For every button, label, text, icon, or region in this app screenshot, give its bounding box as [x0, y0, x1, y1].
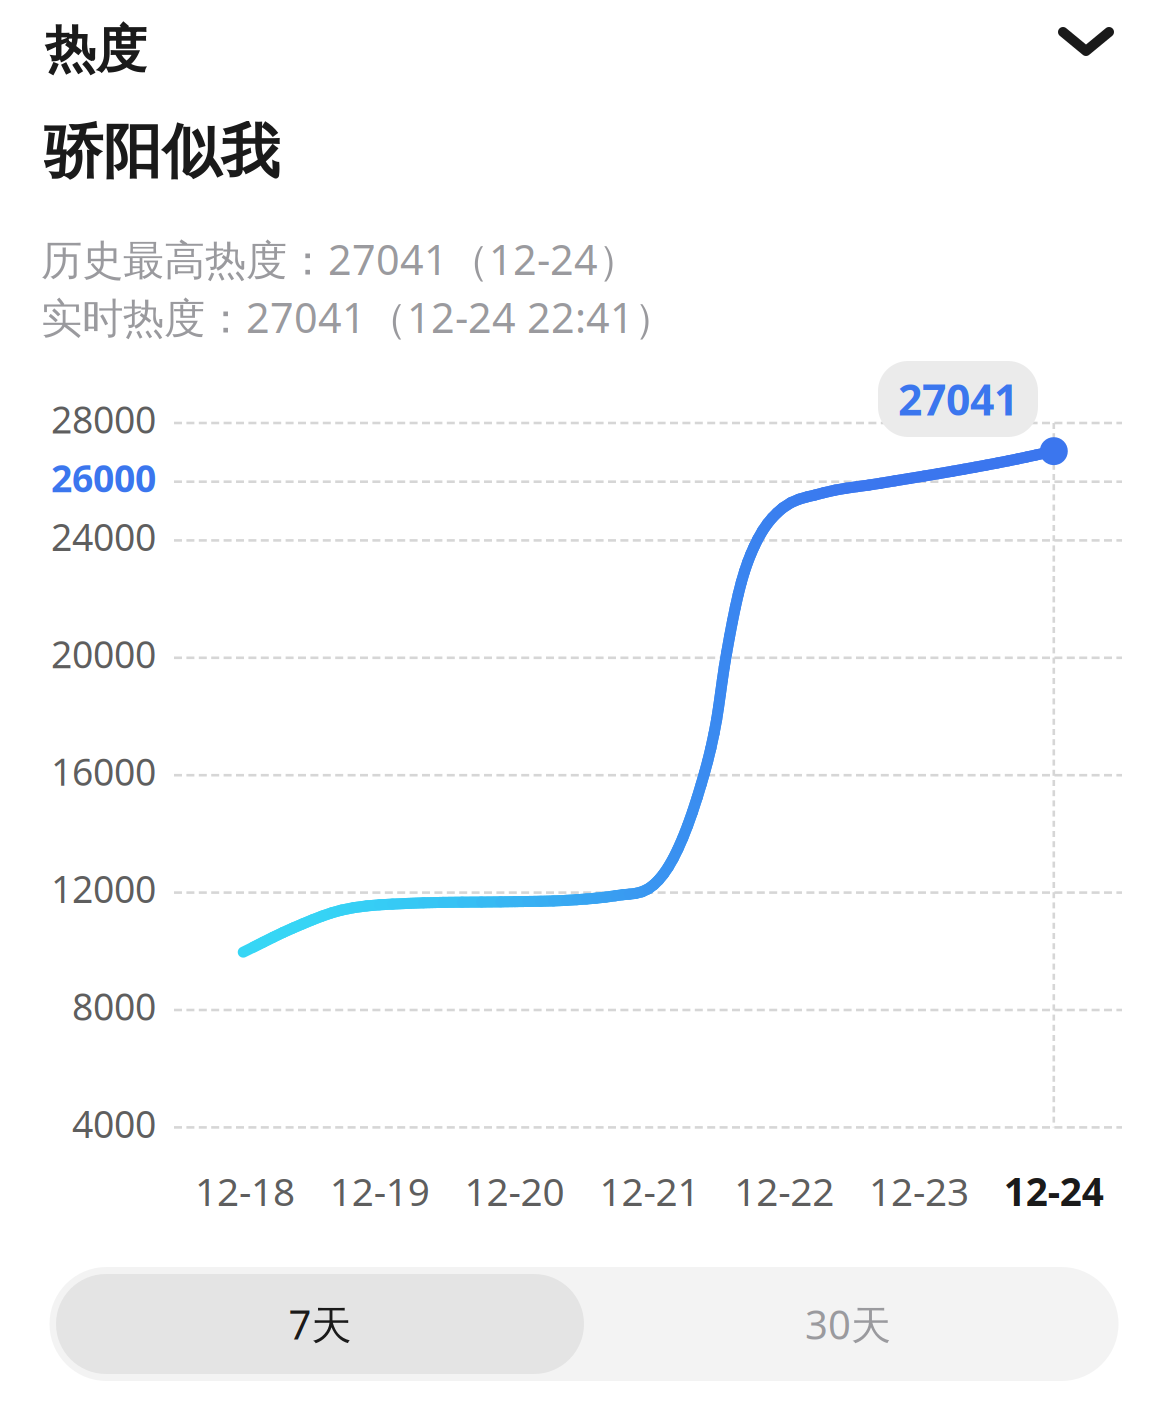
staticText: 12-18	[195, 1165, 295, 1217]
staticText: 12-21	[599, 1165, 699, 1217]
staticText: 骄阳似我	[44, 116, 280, 188]
staticText: 12-24	[1004, 1165, 1104, 1217]
staticText: 30天	[805, 1297, 891, 1350]
staticText: 27041	[898, 371, 1018, 427]
staticText: 历史最高热度：27041（12-24）	[41, 232, 639, 286]
staticText: 12-22	[734, 1165, 834, 1217]
staticText: 7天	[288, 1297, 351, 1350]
staticText: 12-23	[869, 1165, 969, 1217]
staticText: 12-19	[330, 1165, 430, 1217]
staticText: 26000	[51, 453, 156, 502]
staticText: 4000	[72, 1099, 156, 1148]
staticText: 12-20	[465, 1165, 565, 1217]
staticText: 8000	[72, 981, 156, 1031]
button[interactable]: 30天	[584, 1274, 1112, 1374]
staticText: 12000	[51, 864, 156, 913]
staticText: 24000	[51, 512, 156, 561]
staticText: 20000	[51, 629, 156, 679]
staticText: 实时热度：27041（12-24 22:41）	[41, 290, 675, 344]
button[interactable]: Collapse	[1038, 0, 1134, 85]
button[interactable]: 7天	[56, 1274, 584, 1374]
staticText: 热度	[45, 19, 147, 81]
staticText: 16000	[51, 746, 156, 796]
staticText: 28000	[51, 394, 156, 444]
